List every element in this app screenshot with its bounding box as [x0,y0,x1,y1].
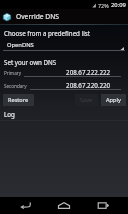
staticText: Override DNS [16,12,59,21]
staticText: Primary [4,70,21,76]
button[interactable]: Back [6,197,44,214]
staticText: OpenDNS [7,41,34,49]
button[interactable]: Apply [101,94,126,106]
staticText: Secondary [4,83,27,89]
button[interactable]: OpenDNS [3,41,125,51]
staticText: 208.67.222.222 [24,68,110,76]
staticText: 20:09 [111,1,126,9]
button[interactable]: Home [45,197,83,214]
button[interactable]: 208.67.222.222 [24,68,121,77]
staticText: Choose from a predefined list [4,29,90,37]
button[interactable]: Recent apps [84,197,122,214]
staticText: Save [80,96,93,104]
staticText: Apply [106,96,121,104]
staticText: 72% [98,2,109,9]
staticText: Restore [8,96,29,104]
button[interactable]: 208.67.220.220 [30,81,121,90]
staticText: Log [4,110,15,118]
button[interactable]: Save [75,94,98,106]
button[interactable]: Restore [3,94,34,106]
staticText: 208.67.220.220 [30,81,110,89]
staticText: Set your own DNS [4,58,57,66]
